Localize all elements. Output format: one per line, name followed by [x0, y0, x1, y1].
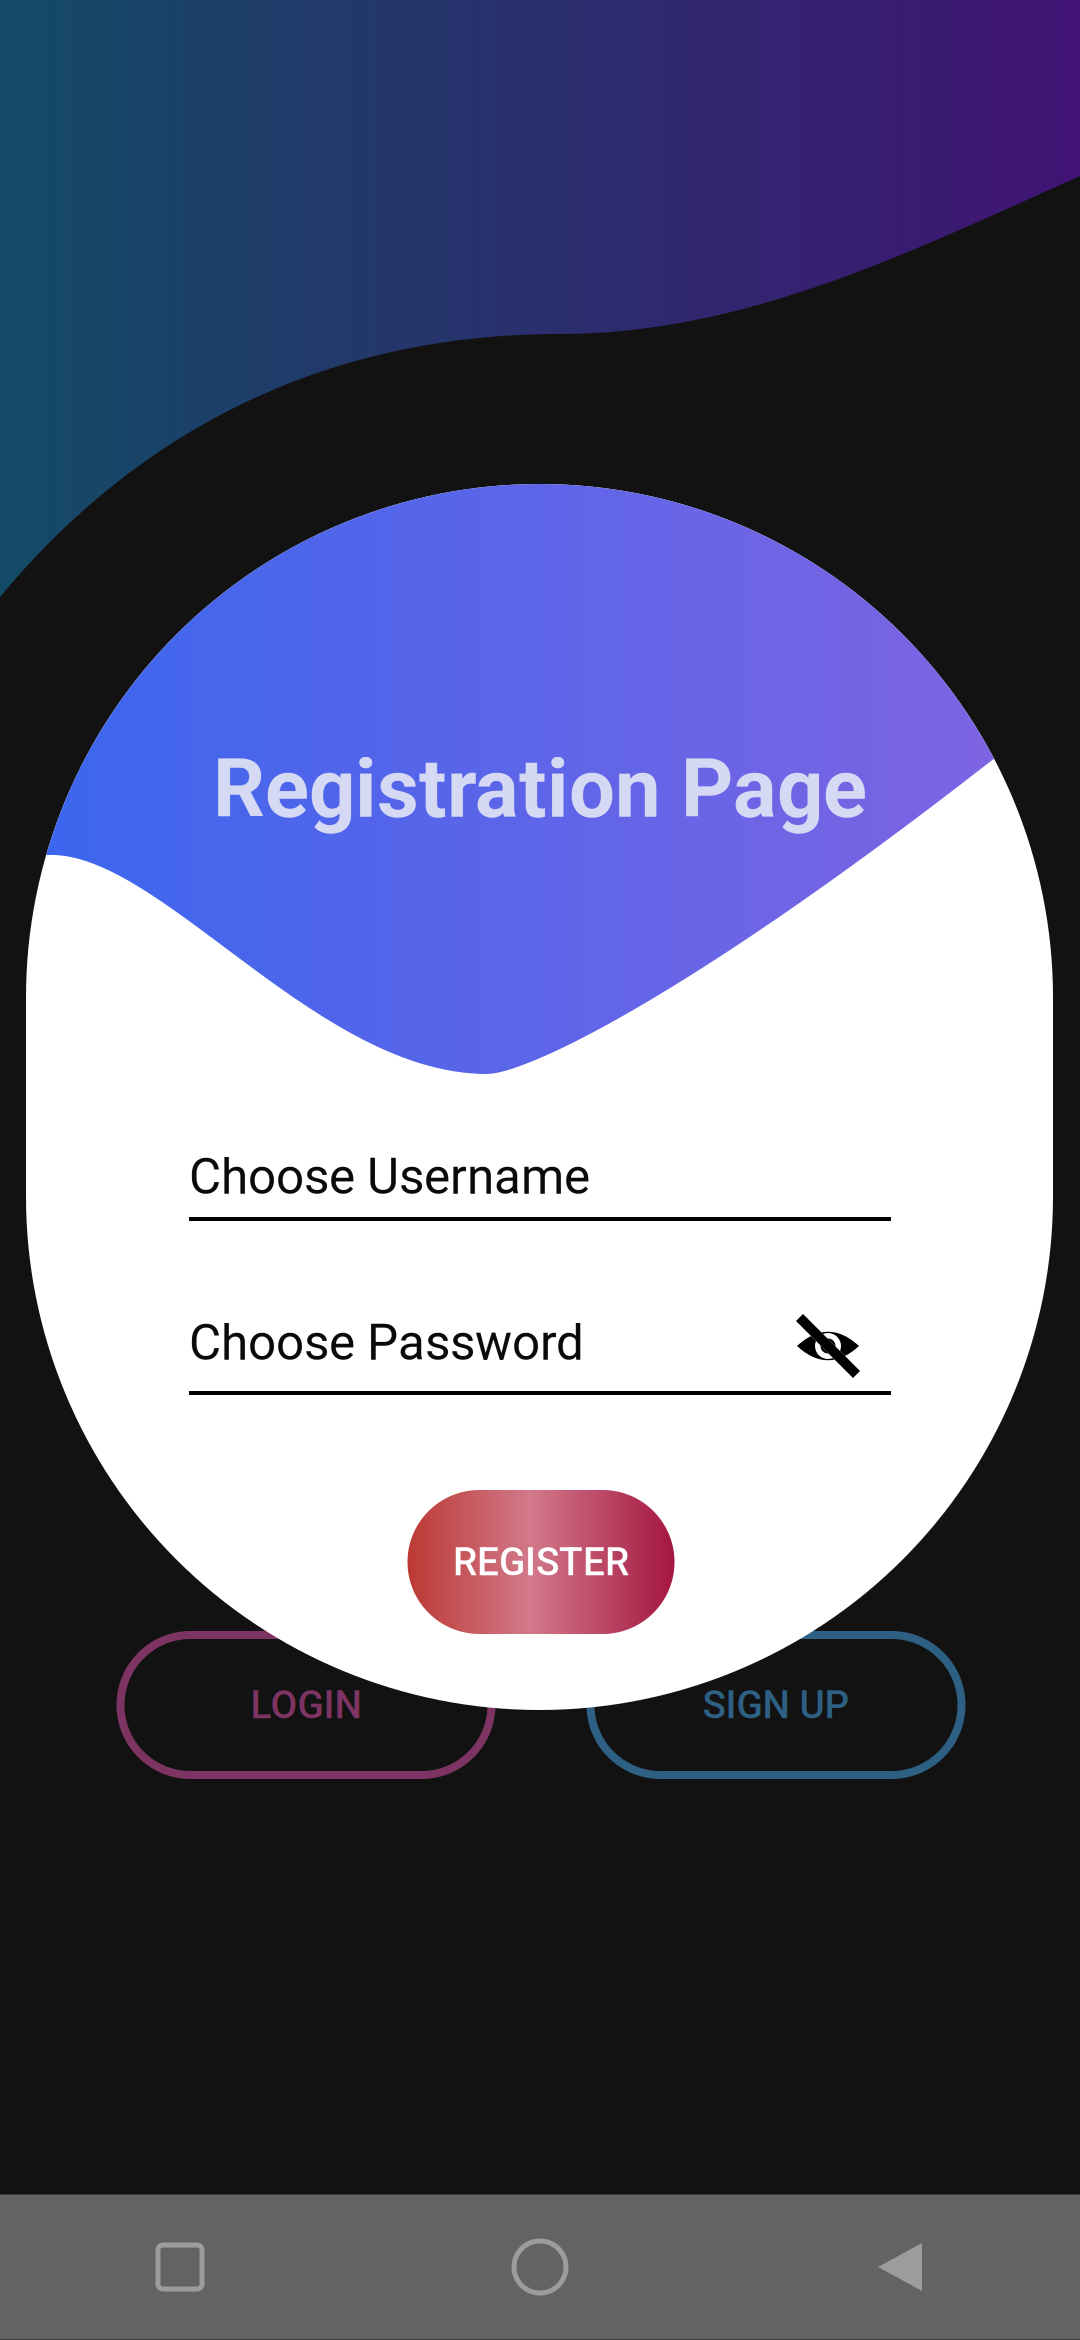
- button[interactable]: Show password: [793, 1311, 863, 1381]
- staticText: Registration Page: [213, 741, 867, 837]
- button[interactable]: LOGIN: [120, 1635, 491, 1775]
- staticText: SIGN UP: [702, 1682, 849, 1728]
- button[interactable]: SIGN UP: [590, 1635, 961, 1775]
- button[interactable]: Recents: [0, 2194, 360, 2339]
- staticText: REGISTER: [453, 1539, 629, 1585]
- button[interactable]: Home: [360, 2194, 720, 2339]
- staticText: Choose Username: [189, 1148, 590, 1206]
- button[interactable]: REGISTER: [407, 1490, 674, 1634]
- staticText: LOGIN: [250, 1682, 361, 1728]
- button[interactable]: Back: [720, 2194, 1080, 2339]
- staticText: Choose Password: [189, 1314, 584, 1372]
